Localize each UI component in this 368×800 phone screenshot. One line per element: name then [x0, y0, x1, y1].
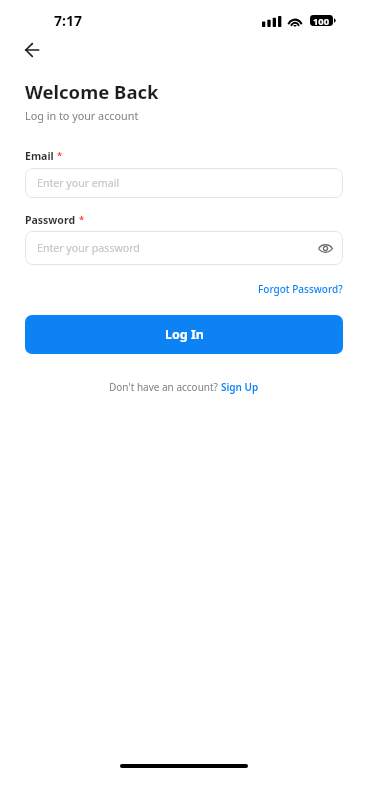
button[interactable]: Show password	[314, 237, 336, 259]
button[interactable]: Back	[12, 30, 52, 70]
button[interactable]: Don't have an account?	[109, 380, 259, 394]
staticText: Don't have an account?	[109, 380, 221, 394]
staticText: Forgot Password?	[258, 282, 343, 296]
button[interactable]: Enter your email	[25, 168, 343, 198]
button[interactable]: Forgot Password?	[258, 282, 343, 296]
staticText: 100	[313, 15, 330, 26]
staticText: Welcome Back	[25, 79, 159, 104]
staticText: Enter your password	[37, 241, 140, 255]
staticText: *	[57, 149, 63, 162]
staticText: Log in to your account	[25, 108, 139, 123]
staticText: 7:17	[54, 11, 82, 30]
button[interactable]: Enter your password	[25, 231, 343, 265]
staticText: Email	[25, 149, 54, 163]
staticText: Password	[25, 213, 76, 227]
button[interactable]: Log In	[25, 315, 343, 354]
staticText: Log In	[165, 326, 204, 343]
staticText: *	[79, 213, 85, 226]
staticText: Sign Up	[221, 380, 259, 394]
staticText: Enter your email	[37, 176, 120, 190]
